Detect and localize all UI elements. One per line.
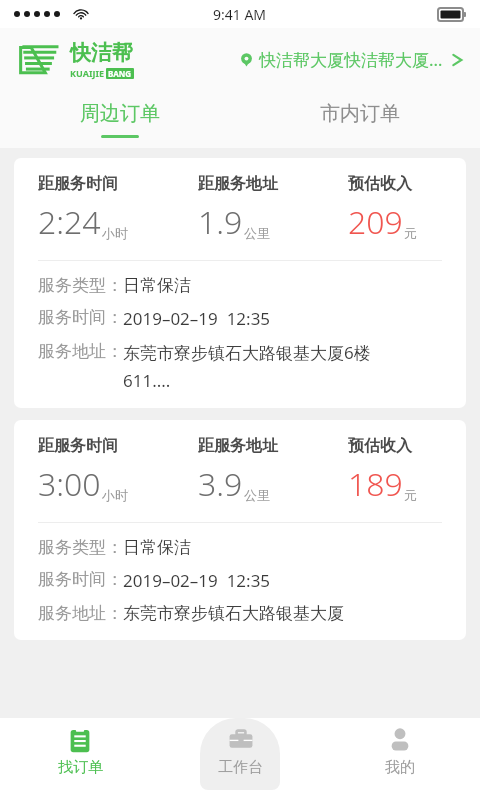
staticText: 预估收入 — [348, 436, 412, 456]
staticText: 公里 — [244, 225, 270, 241]
staticText: 快洁帮 — [70, 40, 133, 66]
staticText: 距服务地址 — [198, 174, 278, 194]
button[interactable]: 找订单 — [0, 718, 160, 800]
button[interactable]: 周边订单 — [0, 90, 240, 148]
staticText: KUAIJIE — [70, 67, 104, 79]
staticText: 小时 — [102, 487, 128, 503]
staticText: 距服务时间 — [38, 436, 118, 456]
staticText: 2019–02–19 12:35 — [123, 569, 271, 592]
staticText: 工作台 — [218, 758, 263, 777]
staticText: 3:00 — [38, 462, 101, 506]
staticText: 服务类型： — [38, 537, 123, 558]
staticText: 日常保洁 — [123, 275, 191, 296]
staticText: 1.9 — [198, 200, 243, 244]
button[interactable]: 市内订单 — [240, 90, 480, 148]
staticText: 找订单 — [58, 758, 103, 777]
staticText: 距服务地址 — [198, 436, 278, 456]
staticText: 我的 — [385, 758, 415, 777]
staticText: BANG — [108, 68, 132, 79]
staticText: 元 — [404, 487, 417, 503]
staticText: 服务地址： — [38, 341, 123, 362]
staticText: 元 — [404, 225, 417, 241]
other: 找订单 — [67, 727, 93, 753]
staticText: 服务时间： — [38, 307, 123, 328]
other: 工作台 — [228, 727, 254, 753]
staticText: 3.9 — [198, 462, 243, 506]
staticText: 2019–02–19 12:35 — [123, 307, 271, 330]
staticText: 周边订单 — [80, 101, 160, 126]
staticText: 小时 — [102, 225, 128, 241]
button[interactable]: 距服务时间 — [14, 158, 466, 408]
button[interactable]: 距服务时间 — [14, 420, 466, 640]
staticText: 市内订单 — [320, 101, 400, 126]
staticText: 服务类型： — [38, 275, 123, 296]
staticText: 公里 — [244, 487, 270, 503]
staticText: 东莞市寮步镇石大路银基大厦 — [123, 603, 344, 624]
button[interactable]: 快洁帮大厦快洁帮大厦… — [227, 40, 476, 79]
staticText: 2:24 — [38, 200, 101, 244]
staticText: 快洁帮大厦快洁帮大厦… — [259, 48, 443, 71]
staticText: 预估收入 — [348, 174, 412, 194]
staticText: 服务地址： — [38, 603, 123, 624]
staticText: 9:41 AM — [213, 5, 267, 24]
staticText: 服务时间： — [38, 569, 123, 590]
button[interactable]: 我的 — [320, 718, 480, 800]
button[interactable]: 工作台 — [200, 718, 280, 790]
staticText: 东莞市寮步镇石大路银基大厦6楼 — [123, 341, 371, 364]
staticText: 189 — [348, 462, 403, 506]
staticText: 209 — [348, 200, 403, 244]
staticText: 距服务时间 — [38, 174, 118, 194]
staticText: 日常保洁 — [123, 537, 191, 558]
staticText: 611.... — [123, 369, 171, 392]
other: 我的 — [387, 727, 413, 753]
